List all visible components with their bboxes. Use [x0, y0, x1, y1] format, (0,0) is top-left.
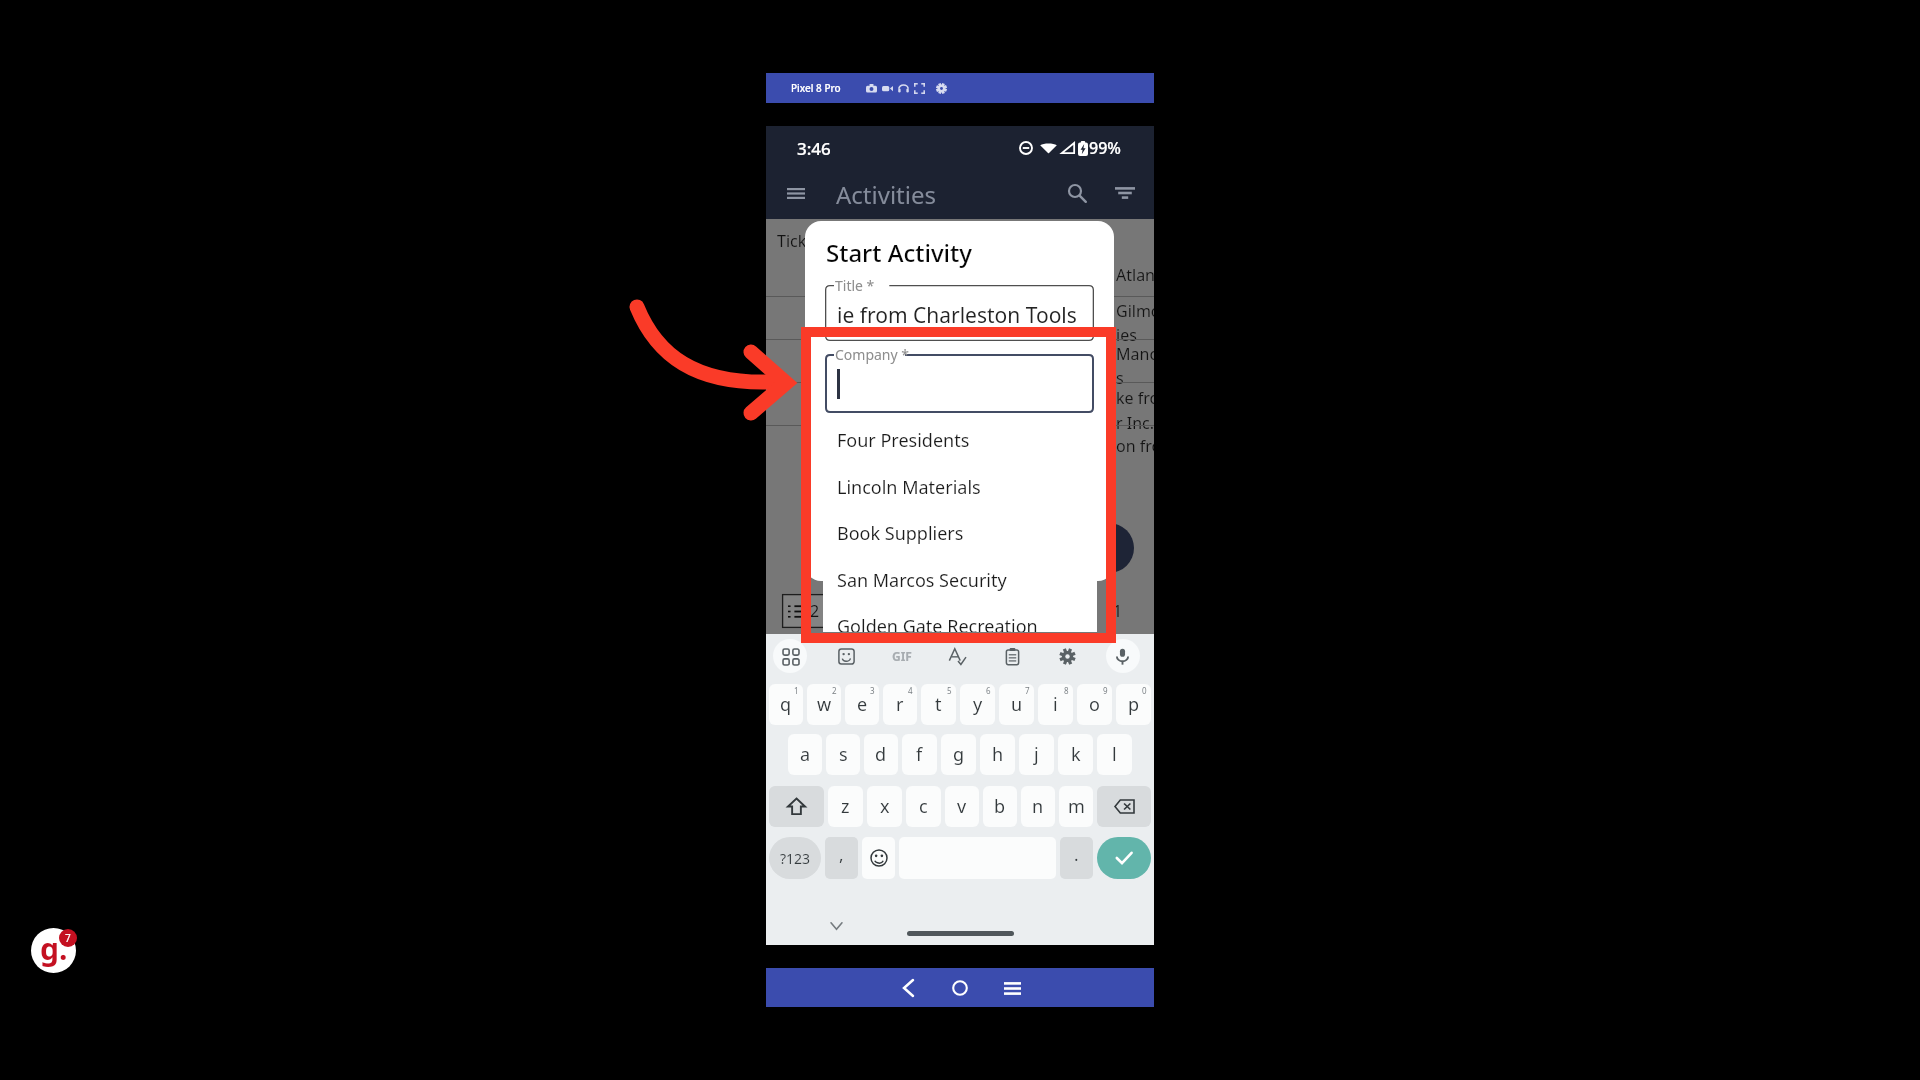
- button[interactable]: c: [906, 786, 941, 827]
- button[interactable]: GIF: [874, 634, 930, 678]
- button[interactable]: Audio: [895, 79, 911, 97]
- staticText: g: [953, 742, 965, 767]
- button[interactable]: Ticket Cancellation from Atlantic Rail: [766, 219, 1154, 296]
- button[interactable]: Emulator settings: [933, 79, 949, 97]
- button[interactable]: l: [1097, 734, 1132, 775]
- button[interactable]: ?123: [769, 837, 821, 879]
- button[interactable]: x: [867, 786, 902, 827]
- staticText: Company *: [835, 345, 910, 364]
- button[interactable]: a: [788, 734, 822, 775]
- button[interactable]: g: [941, 734, 976, 775]
- staticText: q: [780, 692, 792, 717]
- button[interactable]: Four Presidents: [823, 420, 1097, 460]
- staticText: Atlantic: [1116, 264, 1154, 286]
- staticText: Manor: [1116, 343, 1154, 365]
- button[interactable]: Repair Dawson from Order: [766, 425, 1154, 468]
- button[interactable]: Stickers: [818, 634, 874, 678]
- button[interactable]: Pickup Bike from Tower Inc.: [766, 382, 1154, 425]
- staticText: 3:46: [797, 137, 831, 160]
- button[interactable]: q: [769, 684, 803, 725]
- button[interactable]: Record screen: [879, 79, 895, 97]
- button[interactable]: Home: [941, 969, 979, 1007]
- staticText: c: [919, 794, 928, 819]
- button[interactable]: Add activity: [1084, 523, 1134, 573]
- button[interactable]: Back: [889, 969, 927, 1007]
- button[interactable]: j: [1019, 734, 1054, 775]
- staticText: Lincoln Materials: [837, 475, 981, 500]
- staticText: Ticket: [777, 230, 822, 252]
- button[interactable]: San Marcos Security: [823, 560, 1097, 600]
- staticText: h: [992, 742, 1004, 767]
- button[interactable]: o: [1077, 684, 1112, 725]
- staticText: 8: [1064, 685, 1069, 696]
- button[interactable]: Group by: [782, 594, 832, 628]
- button[interactable]: r: [883, 684, 917, 725]
- button[interactable]: Keyboard settings: [1040, 634, 1095, 678]
- button[interactable]: z: [828, 786, 863, 827]
- staticText: o: [1089, 692, 1100, 717]
- button[interactable]: Search: [1060, 176, 1094, 210]
- button[interactable]: d: [864, 734, 898, 775]
- button[interactable]: Enter: [1097, 837, 1151, 879]
- button[interactable]: Emoji: [862, 837, 895, 879]
- staticText: f: [916, 742, 923, 767]
- staticText: Start Activity: [826, 236, 972, 269]
- button[interactable]: Backspace: [1097, 786, 1151, 827]
- button[interactable]: Call Gilmore Industries: [766, 296, 1154, 339]
- button[interactable]: p: [1116, 684, 1151, 725]
- button[interactable]: m: [1059, 786, 1093, 827]
- staticText: ke from: [1116, 387, 1154, 409]
- staticText: 7: [1025, 685, 1030, 696]
- staticText: v: [957, 794, 967, 819]
- staticText: b: [994, 794, 1006, 819]
- button[interactable]: v: [945, 786, 979, 827]
- button[interactable]: Golden Gate Recreation: [823, 606, 1097, 632]
- staticText: s: [839, 742, 848, 767]
- button[interactable]: f: [902, 734, 937, 775]
- staticText: k: [1071, 742, 1081, 767]
- staticText: w: [817, 692, 832, 717]
- button[interactable]: ,: [825, 837, 858, 879]
- button[interactable]: n: [1021, 786, 1055, 827]
- staticText: ie from Charleston Tools: [837, 301, 1077, 330]
- button[interactable]: Clipboard: [985, 634, 1040, 678]
- button[interactable]: h: [980, 734, 1015, 775]
- staticText: Title *: [835, 276, 875, 295]
- button[interactable]: w: [807, 684, 841, 725]
- button[interactable]: Recent apps: [993, 969, 1031, 1007]
- staticText: r: [896, 692, 904, 717]
- staticText: .: [1074, 843, 1079, 866]
- button[interactable]: y: [960, 684, 995, 725]
- staticText: p: [1128, 692, 1140, 717]
- button[interactable]: Dismiss dialog: [766, 219, 1154, 634]
- staticText: 5: [947, 685, 952, 696]
- button[interactable]: Filter: [1108, 176, 1142, 210]
- button[interactable]: Fullscreen: [911, 79, 927, 97]
- button[interactable]: k: [1058, 734, 1093, 775]
- button[interactable]: s: [826, 734, 860, 775]
- button[interactable]: i: [1038, 684, 1073, 725]
- button[interactable]: Shift: [769, 786, 824, 827]
- staticText: 6: [986, 685, 991, 696]
- button[interactable]: Book Suppliers: [823, 513, 1097, 553]
- staticText: ?123: [780, 849, 811, 868]
- staticText: 1: [794, 685, 799, 696]
- staticText: g.: [40, 928, 68, 969]
- button[interactable]: Take screenshot: [863, 79, 879, 97]
- button[interactable]: Switch keyboard: [766, 634, 818, 678]
- button[interactable]: b: [983, 786, 1017, 827]
- staticText: 1: [1113, 600, 1123, 622]
- button[interactable]: t: [921, 684, 956, 725]
- staticText: 99%: [1089, 137, 1121, 159]
- button[interactable]: Open navigation drawer: [779, 176, 813, 210]
- button[interactable]: Lincoln Materials: [823, 467, 1097, 507]
- button[interactable]: Delivery Manor Partners: [766, 339, 1154, 382]
- button[interactable]: u: [999, 684, 1034, 725]
- button[interactable]: Hide keyboard: [824, 914, 848, 938]
- button[interactable]: e: [845, 684, 879, 725]
- button[interactable]: .: [1060, 837, 1093, 879]
- button[interactable]: Voice input: [1095, 634, 1150, 678]
- button[interactable]: Text correction: [930, 634, 985, 678]
- staticText: n: [1032, 794, 1044, 819]
